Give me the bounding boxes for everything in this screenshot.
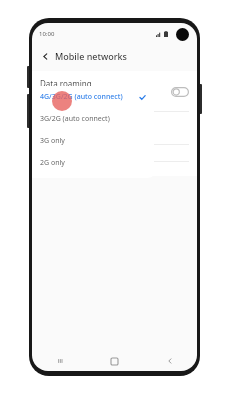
button[interactable]: Data roaming toggle [171, 87, 189, 97]
staticText: 3G/2G (auto connect) [40, 114, 146, 124]
button[interactable]: 3G only [32, 130, 154, 152]
staticText: Data roaming [40, 78, 92, 89]
button[interactable]: 3G/2G (auto connect) [32, 108, 154, 130]
staticText: Network mode [40, 118, 97, 129]
button[interactable]: Home [87, 351, 142, 371]
staticText: 3G only [40, 136, 146, 146]
staticText: 4G/3G/2G (auto connect) [40, 92, 139, 102]
staticText: Using mobile data while roaming may resu… [40, 91, 165, 105]
button[interactable]: Back [38, 49, 52, 63]
staticText: 2G only [40, 158, 146, 168]
staticText: Mobile networks [55, 50, 127, 62]
button[interactable]: 2G only [32, 152, 154, 174]
staticText: 10:00 [39, 30, 55, 38]
button[interactable]: Recent apps [32, 351, 87, 371]
button[interactable]: Back [142, 351, 197, 371]
button[interactable]: Network mode [32, 112, 197, 144]
button[interactable]: Data roaming [32, 71, 197, 111]
button[interactable]: 4G/3G/2G (auto connect) [32, 86, 154, 108]
